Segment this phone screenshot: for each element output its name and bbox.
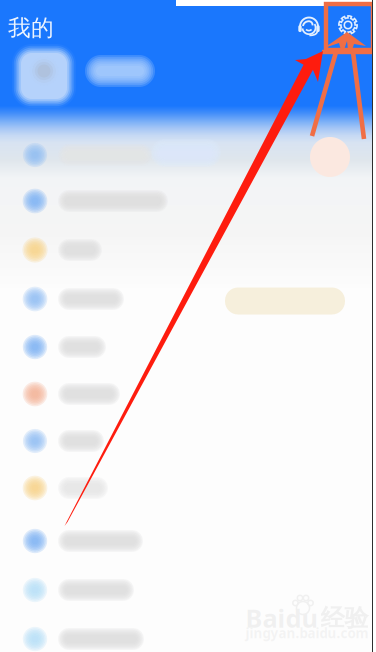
button[interactable] [0,518,372,564]
staticText: 我的 [8,14,54,42]
button[interactable] [0,616,372,652]
button[interactable] [0,132,372,178]
button[interactable] [0,276,372,322]
button[interactable] [0,371,372,417]
button[interactable]: 设置 [334,11,362,39]
staticText: jingyan.baidu.com [245,624,368,642]
button[interactable] [0,178,372,224]
button[interactable] [0,324,372,370]
button[interactable] [0,567,372,613]
button[interactable] [0,418,372,464]
button[interactable] [0,41,376,111]
button[interactable] [225,287,345,314]
button[interactable] [0,227,372,273]
button[interactable] [0,465,372,511]
button[interactable]: 在线客服 [295,12,323,40]
staticText: 经验 [320,603,368,633]
staticText: Baidu [245,601,317,635]
